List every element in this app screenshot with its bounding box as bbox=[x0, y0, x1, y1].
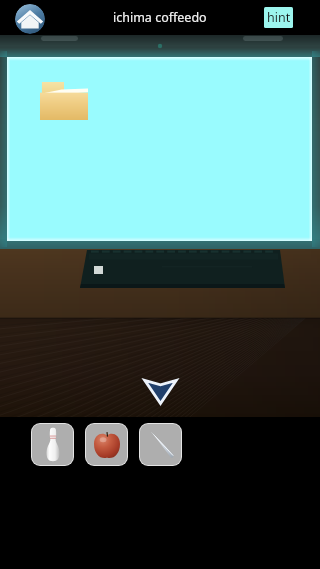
staticText: ichima coffeedo bbox=[113, 9, 207, 26]
button[interactable]: Needle bbox=[139, 423, 182, 466]
button[interactable]: Tomato bbox=[85, 423, 128, 466]
button[interactable]: Go down bbox=[142, 375, 179, 405]
button[interactable]: Bowling pin bbox=[31, 423, 74, 466]
button[interactable]: hint bbox=[264, 7, 293, 28]
staticText: hint bbox=[267, 9, 291, 26]
button[interactable]: Home bbox=[15, 4, 45, 34]
